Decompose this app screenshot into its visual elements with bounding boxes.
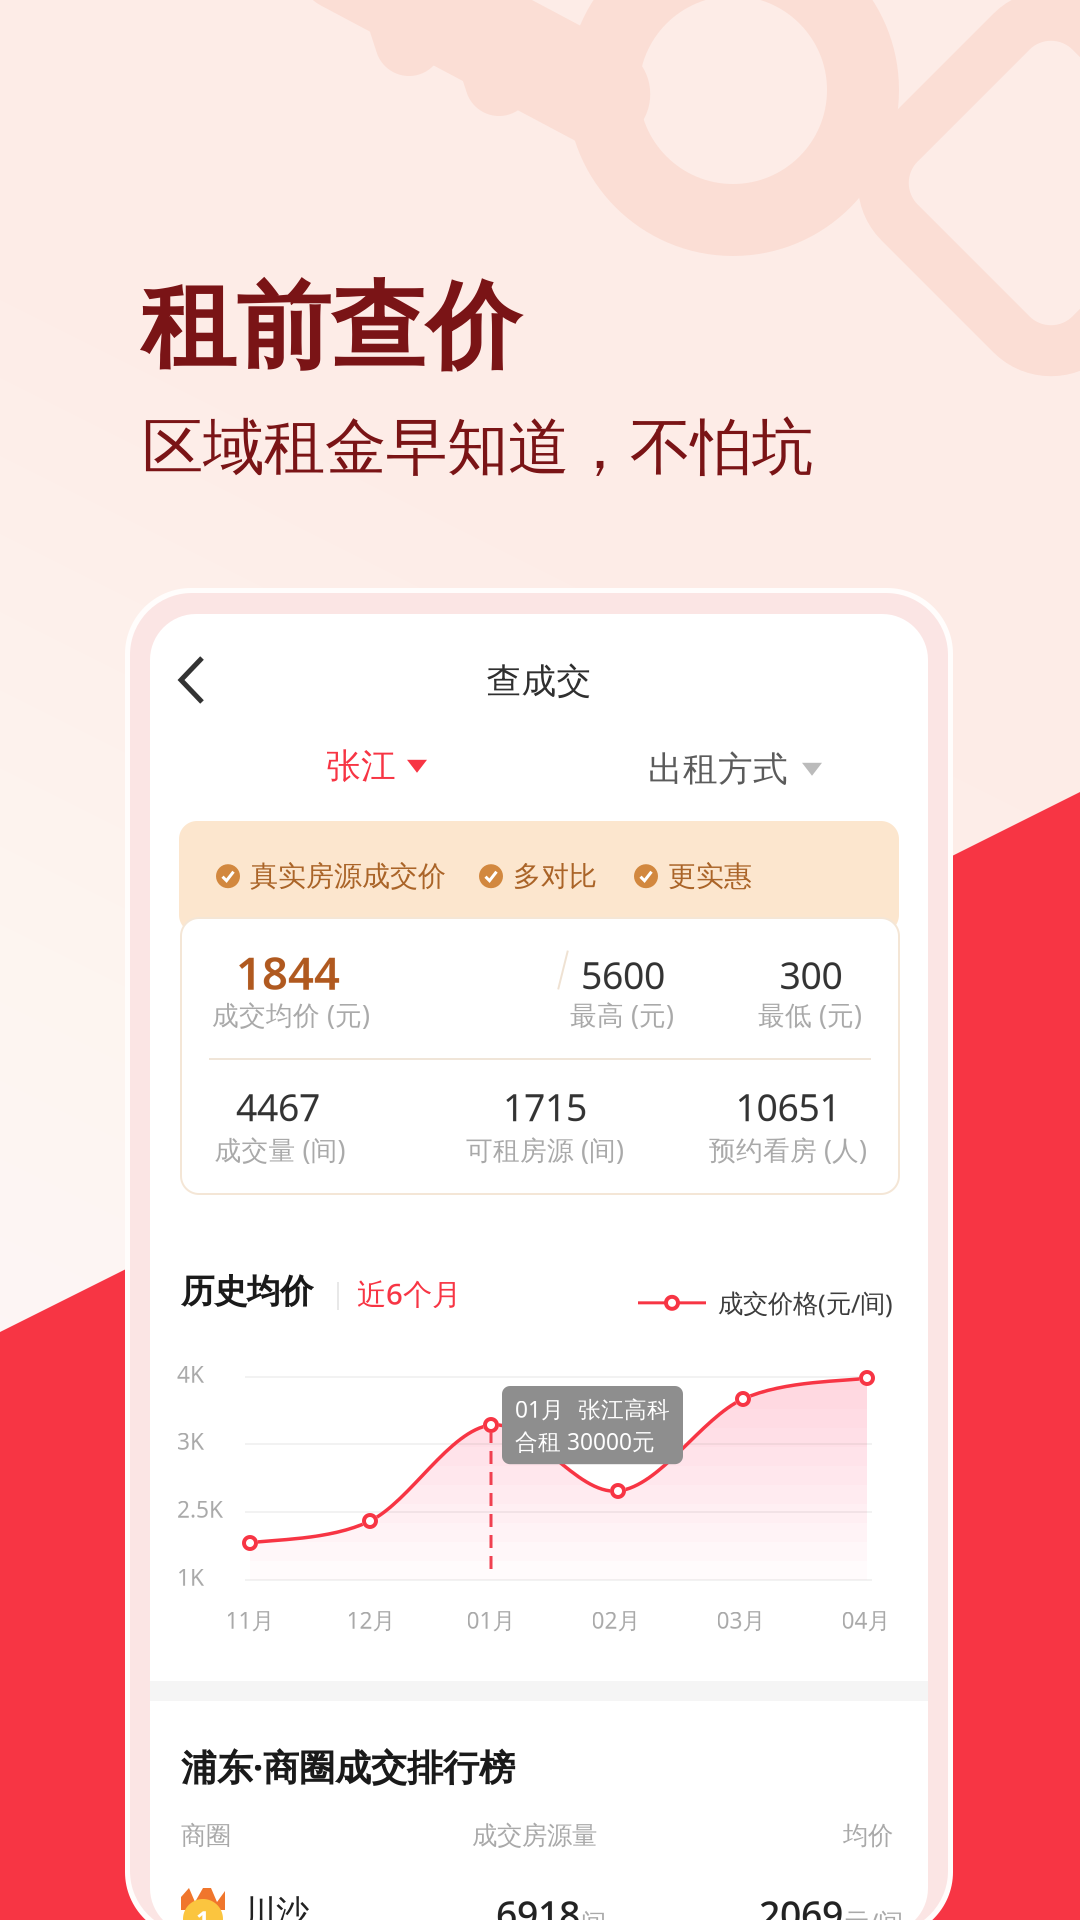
- staticText: 4K: [177, 1359, 204, 1389]
- staticText: 300: [779, 950, 842, 1000]
- staticText: 4467: [236, 1082, 320, 1132]
- staticText: 1: [196, 1903, 210, 1920]
- staticText: 2.5K: [177, 1494, 223, 1524]
- staticText: 可租房源 (间): [466, 1132, 624, 1167]
- button[interactable]: 出租方式: [648, 748, 822, 791]
- staticText: 2069: [759, 1889, 843, 1920]
- staticText: 11月: [225, 1605, 274, 1635]
- staticText: 1715: [503, 1082, 587, 1132]
- staticText: 间: [581, 1907, 606, 1920]
- staticText: 5600: [581, 950, 665, 1000]
- staticText: 区域租金早知道，不怕坑: [142, 410, 813, 485]
- staticText: 更实惠: [668, 859, 752, 893]
- staticText: 3K: [177, 1426, 204, 1456]
- staticText: 02月: [591, 1605, 640, 1635]
- staticText: 商圈: [181, 1820, 231, 1851]
- staticText: 最高 (元): [570, 997, 674, 1032]
- staticText: 多对比: [513, 859, 597, 893]
- staticText: 川沙: [243, 1892, 309, 1920]
- staticText: 合租 30000元: [515, 1426, 655, 1456]
- staticText: 浦东·商圈成交排行榜: [181, 1743, 515, 1791]
- staticText: 6918: [496, 1889, 580, 1920]
- staticText: 最低 (元): [758, 997, 862, 1032]
- staticText: 张江: [326, 745, 396, 788]
- staticText: 均价: [843, 1820, 893, 1851]
- staticText: 成交价格(元/间): [718, 1286, 893, 1320]
- staticText: 04月: [841, 1605, 890, 1635]
- staticText: 03月: [716, 1605, 765, 1635]
- button[interactable]: 张江: [326, 745, 427, 788]
- staticText: 查成交: [486, 660, 591, 703]
- staticText: 预约看房 (人): [709, 1132, 867, 1167]
- staticText: 成交房源量: [472, 1820, 597, 1851]
- staticText: 1K: [177, 1562, 204, 1592]
- staticText: 12月: [346, 1605, 395, 1635]
- button[interactable]: Back: [164, 642, 218, 718]
- staticText: 出租方式: [648, 748, 788, 791]
- staticText: 成交均价 (元): [212, 997, 370, 1032]
- staticText: 真实房源成交价: [250, 859, 446, 893]
- staticText: 1844: [236, 942, 340, 1002]
- staticText: 租前查价: [141, 269, 521, 385]
- staticText: 成交量 (间): [214, 1132, 345, 1167]
- staticText: 01月: [466, 1605, 515, 1635]
- staticText: 历史均价: [181, 1271, 313, 1312]
- staticText: 近6个月: [357, 1274, 461, 1313]
- staticText: 元/间: [844, 1905, 903, 1920]
- staticText: 01月 张江高科: [515, 1394, 670, 1424]
- staticText: 10651: [735, 1082, 840, 1132]
